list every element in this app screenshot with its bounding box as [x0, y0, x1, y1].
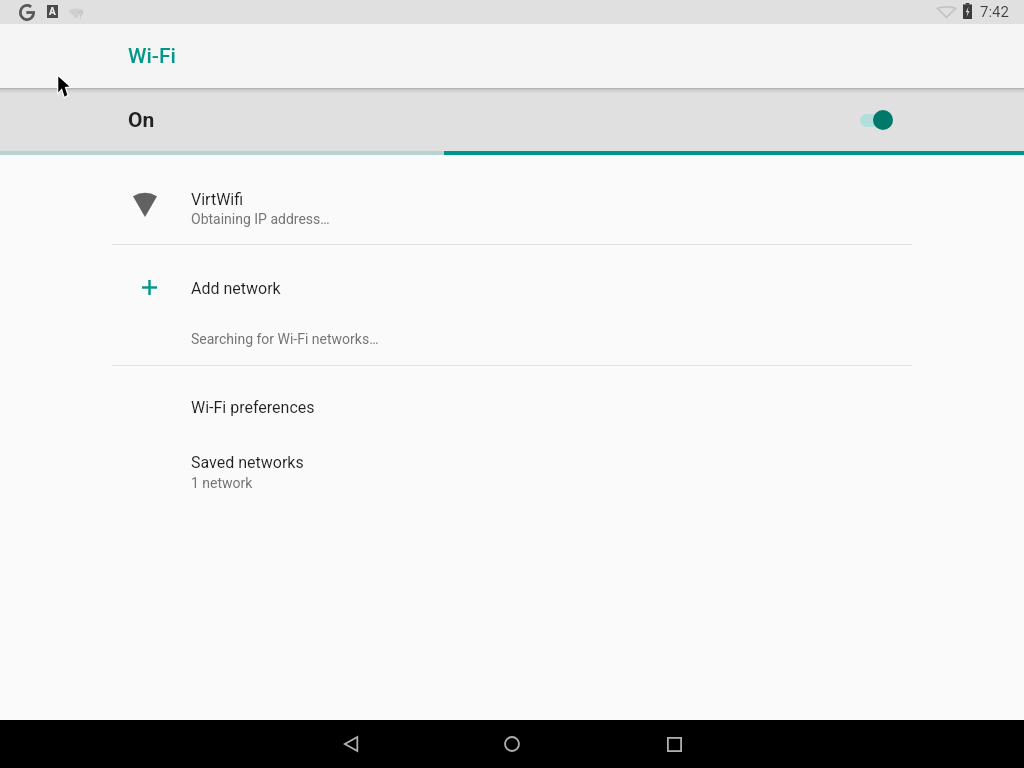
- button[interactable]: Recent apps: [626, 720, 722, 768]
- button[interactable]: VirtWifi: [0, 167, 1024, 244]
- button[interactable]: Home: [464, 720, 560, 768]
- staticText: Wi-Fi preferences: [191, 398, 315, 417]
- button[interactable]: Wi-Fi on/off: [859, 110, 895, 130]
- button[interactable]: On: [0, 88, 1024, 151]
- staticText: A: [49, 6, 56, 18]
- staticText: 1 network: [191, 475, 253, 491]
- staticText: On: [128, 108, 155, 133]
- button[interactable]: Wi-Fi preferences: [0, 380, 1024, 435]
- staticText: Obtaining IP address…: [191, 211, 330, 227]
- button[interactable]: Saved networks: [0, 435, 1024, 500]
- staticText: Add network: [191, 279, 281, 298]
- staticText: 7:42: [980, 3, 1009, 21]
- staticText: Searching for Wi-Fi networks…: [191, 331, 379, 347]
- button[interactable]: Add network: [0, 258, 1024, 317]
- staticText: Saved networks: [191, 453, 304, 472]
- staticText: VirtWifi: [191, 190, 244, 209]
- staticText: ?: [78, 9, 84, 22]
- button[interactable]: Back: [303, 720, 399, 768]
- staticText: Wi-Fi: [128, 44, 176, 69]
